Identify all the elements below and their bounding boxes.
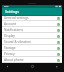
- button[interactable]: Sound & vibration: [2, 39, 62, 44]
- button[interactable]: Account: [2, 21, 62, 26]
- staticText: Display: [4, 34, 56, 38]
- button[interactable]: Home: [30, 64, 35, 69]
- button[interactable]: Storage: [2, 45, 62, 50]
- button[interactable]: Enabled: [56, 34, 60, 38]
- staticText: Sound & vibration: [4, 40, 56, 44]
- staticText: Notifications: [4, 28, 56, 32]
- button[interactable]: Enabled: [56, 58, 60, 62]
- button[interactable]: Display: [2, 33, 62, 38]
- button[interactable]: Privacy: [2, 51, 62, 56]
- button[interactable]: General settings: [2, 16, 62, 20]
- button[interactable]: Notifications: [2, 27, 62, 32]
- button[interactable]: Settings: [2, 8, 62, 15]
- staticText: General settings: [4, 16, 56, 20]
- button[interactable]: Enabled: [56, 46, 60, 50]
- button[interactable]: Enabled: [56, 52, 60, 56]
- button[interactable]: Enabled: [56, 16, 60, 20]
- button[interactable]: Enabled: [56, 22, 60, 26]
- staticText: Storage: [4, 46, 56, 50]
- staticText: About phone: [4, 58, 56, 62]
- staticText: Account: [4, 22, 56, 26]
- staticText: Settings: [5, 9, 19, 14]
- button[interactable]: About phone: [2, 57, 62, 62]
- button[interactable]: Recent apps: [54, 64, 59, 69]
- button[interactable]: Back: [5, 64, 10, 69]
- staticText: Privacy: [4, 52, 56, 56]
- button[interactable]: Enabled: [56, 28, 60, 32]
- button[interactable]: Enabled: [56, 40, 60, 44]
